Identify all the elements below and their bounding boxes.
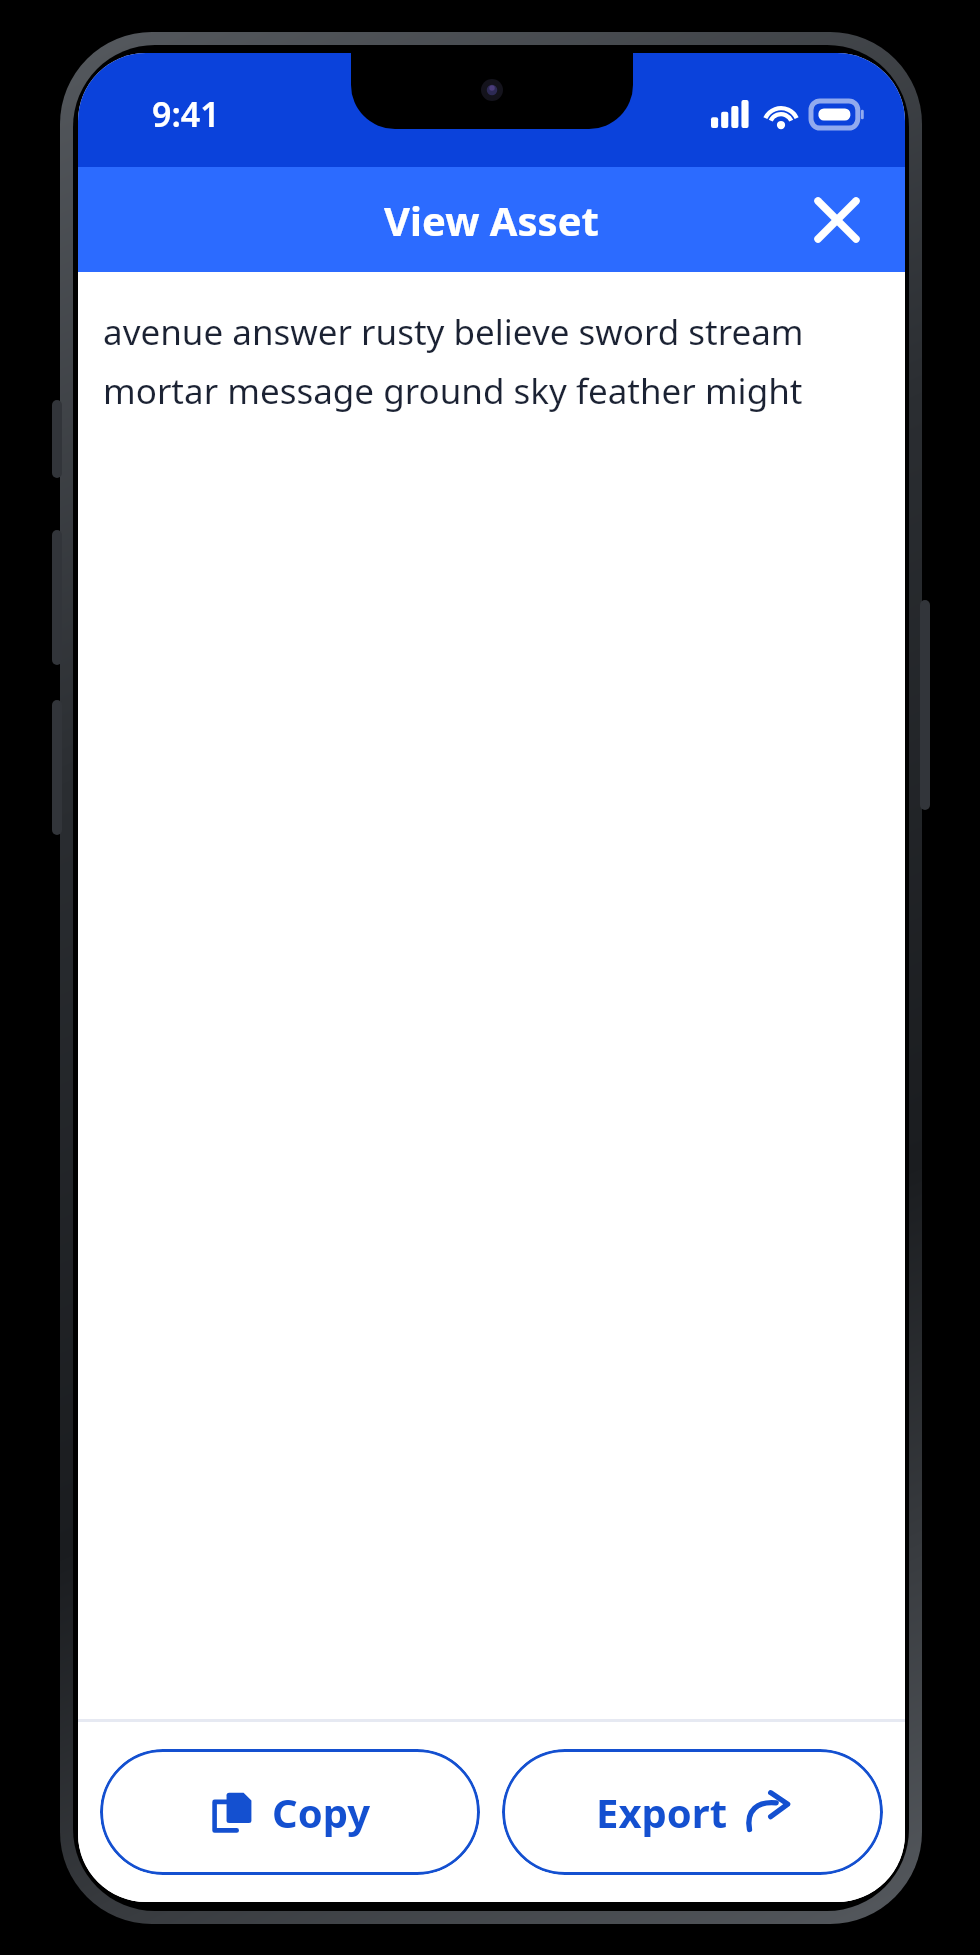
- button[interactable]: Export: [502, 1749, 883, 1875]
- button[interactable]: Close: [803, 186, 871, 254]
- button[interactable]: Copy: [100, 1749, 480, 1875]
- staticText: avenue answer rusty believe sword stream…: [103, 308, 880, 414]
- staticText: Copy: [272, 1785, 370, 1839]
- staticText: View Asset: [384, 193, 599, 247]
- staticText: Export: [596, 1785, 728, 1839]
- staticText: 9:41: [152, 91, 220, 137]
